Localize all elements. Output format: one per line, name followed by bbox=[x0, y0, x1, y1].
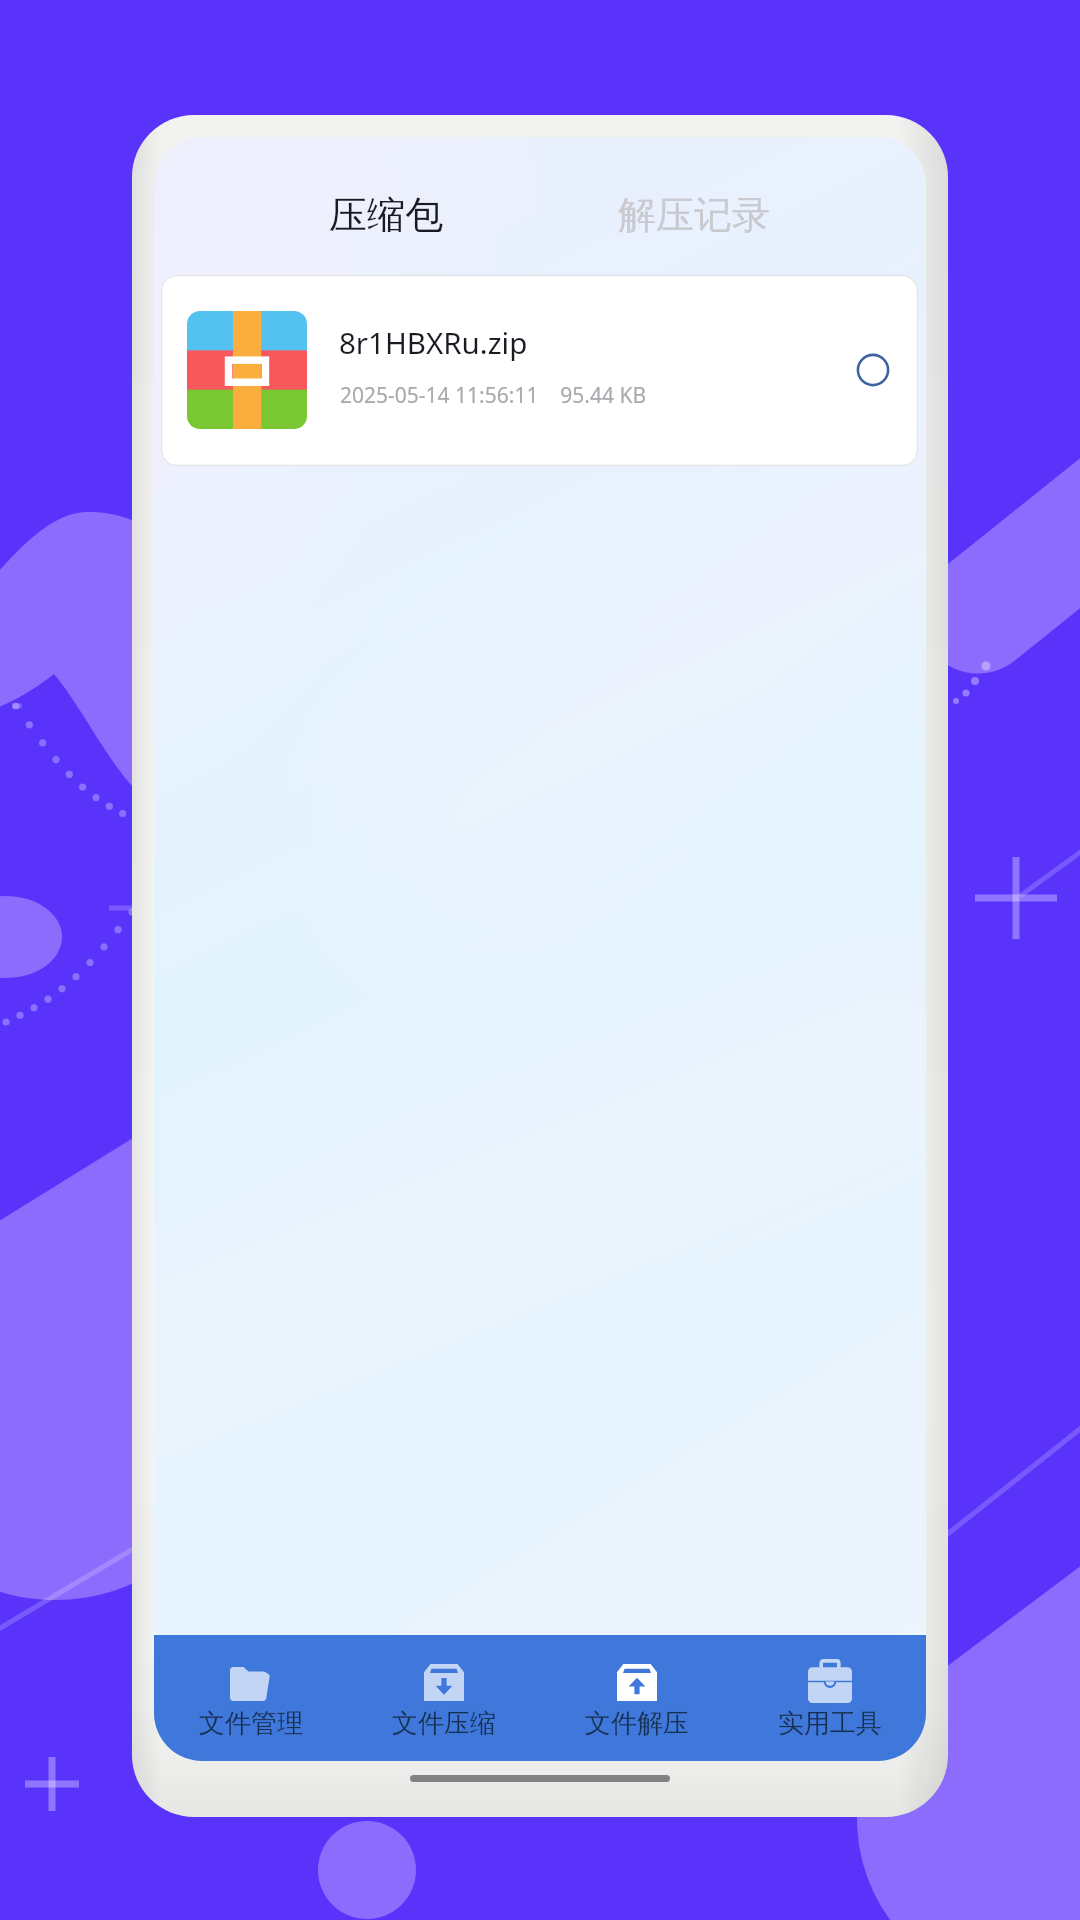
staticText: 文件管理 bbox=[199, 1707, 303, 1740]
button[interactable]: 文件管理 bbox=[154, 1635, 347, 1761]
button[interactable]: 8r1HBXRu.zip bbox=[161, 275, 918, 466]
staticText: 文件解压 bbox=[585, 1707, 689, 1740]
staticText: 实用工具 bbox=[778, 1707, 882, 1740]
staticText: 解压记录 bbox=[618, 191, 770, 239]
button[interactable]: 实用工具 bbox=[733, 1635, 926, 1761]
staticText: 压缩包 bbox=[329, 191, 443, 239]
staticText: 文件压缩 bbox=[392, 1707, 496, 1740]
staticText: 8r1HBXRu.zip bbox=[339, 322, 528, 362]
staticText: 2025-05-14 11:56:11 95.44 KB bbox=[340, 381, 647, 410]
button[interactable]: 解压记录 bbox=[596, 175, 792, 255]
button[interactable]: Select file bbox=[839, 336, 907, 404]
button[interactable]: 压缩包 bbox=[307, 175, 465, 255]
button[interactable]: 文件压缩 bbox=[347, 1635, 540, 1761]
button[interactable]: 文件解压 bbox=[540, 1635, 733, 1761]
